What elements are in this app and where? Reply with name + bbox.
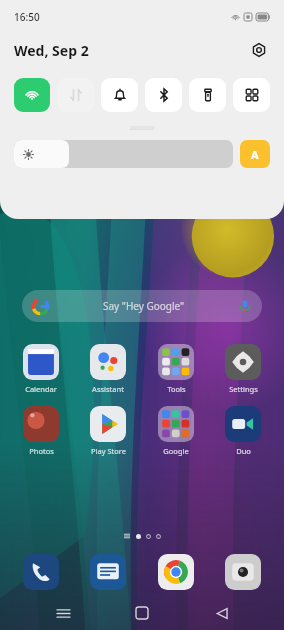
- staticText: A: [251, 147, 259, 162]
- staticText: Duo: [236, 446, 251, 456]
- button[interactable]: A: [240, 140, 270, 168]
- staticText: Photos: [29, 446, 54, 456]
- button[interactable]: Duo: [216, 406, 270, 456]
- staticText: Calendar: [25, 384, 57, 394]
- button[interactable]: Settings: [216, 344, 270, 394]
- button[interactable]: Google: [149, 406, 203, 456]
- staticText: 16:50: [14, 10, 40, 24]
- staticText: Tools: [167, 384, 186, 394]
- staticText: Google: [163, 446, 189, 456]
- button[interactable]: Calendar: [14, 344, 68, 394]
- staticText: Wed, Sep 2: [14, 41, 89, 60]
- button[interactable]: Quick setting: [189, 78, 226, 112]
- staticText: Play Store: [91, 446, 126, 456]
- button[interactable]: [81, 554, 135, 590]
- staticText: Settings: [229, 384, 258, 394]
- button[interactable]: Assistant: [81, 344, 135, 394]
- button[interactable]: Recents: [46, 596, 80, 630]
- button[interactable]: [216, 554, 270, 590]
- other: Voice search: [238, 299, 252, 313]
- button[interactable]: Brightness: [14, 140, 233, 168]
- button[interactable]: Tools: [149, 344, 203, 394]
- button[interactable]: Home: [125, 596, 159, 630]
- button[interactable]: Say "Hey Google": [22, 290, 262, 322]
- button[interactable]: Quick setting: [233, 78, 270, 112]
- button[interactable]: Quick setting: [145, 78, 182, 112]
- button[interactable]: [14, 554, 68, 590]
- button[interactable]: Quick setting: [14, 78, 50, 112]
- button[interactable]: [149, 554, 203, 590]
- button[interactable]: Quick setting: [101, 78, 138, 112]
- staticText: Assistant: [92, 384, 124, 394]
- button[interactable]: Photos: [14, 406, 68, 456]
- button[interactable]: Settings: [248, 39, 270, 61]
- staticText: Say "Hey Google": [103, 299, 185, 313]
- button[interactable]: Back: [205, 596, 239, 630]
- button[interactable]: Quick setting: [57, 78, 94, 112]
- button[interactable]: Play Store: [81, 406, 135, 456]
